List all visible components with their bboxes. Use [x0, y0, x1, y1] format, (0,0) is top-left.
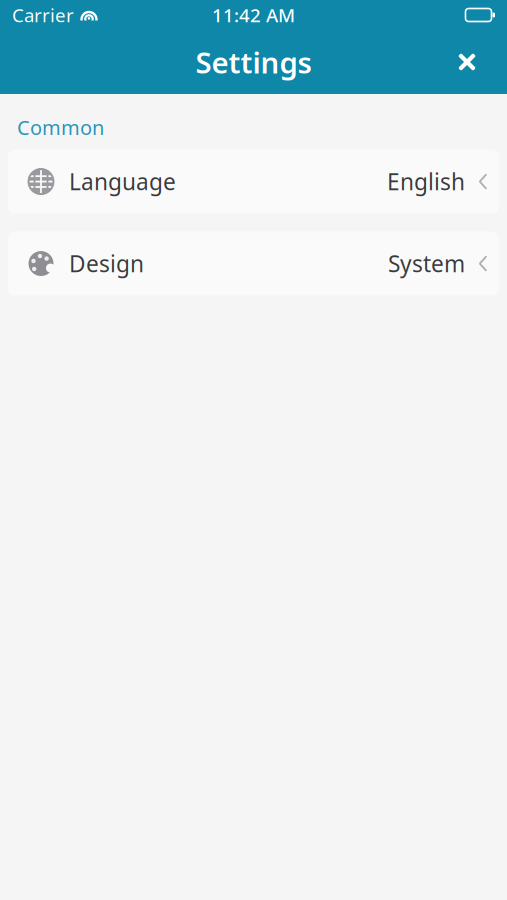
staticText: Design — [69, 248, 144, 279]
button[interactable]: Design — [8, 232, 499, 296]
staticText: English — [387, 166, 465, 197]
button[interactable]: Language — [8, 150, 499, 214]
staticText: Language — [69, 166, 176, 197]
staticText: System — [388, 248, 465, 279]
staticText: 11:42 AM — [212, 3, 295, 27]
button[interactable]: Close — [445, 40, 489, 84]
staticText: Common — [17, 114, 104, 141]
staticText: Settings — [195, 42, 311, 81]
staticText: Carrier — [12, 3, 74, 27]
